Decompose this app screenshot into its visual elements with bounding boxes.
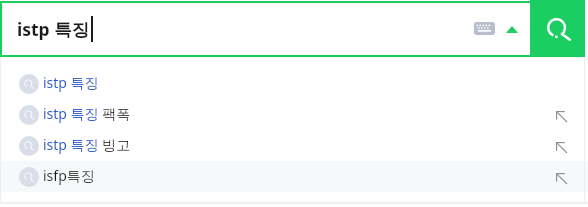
button[interactable]: istp 특징 팩폭: [0, 99, 588, 130]
staticText: isfp특징: [43, 166, 95, 185]
staticText: istp 특징 빙고: [43, 135, 131, 154]
button[interactable]: Keyboard: [465, 9, 497, 49]
button[interactable]: istp 특징 빙고: [0, 130, 588, 161]
button[interactable]: Use this suggestion: [546, 161, 576, 192]
button[interactable]: Search: [530, 0, 585, 57]
button[interactable]: Use this suggestion: [546, 130, 576, 161]
staticText: istp 특징: [17, 17, 90, 41]
button[interactable]: istp 특징: [0, 68, 588, 99]
button[interactable]: isfp특징: [0, 161, 588, 192]
staticText: istp 특징: [43, 73, 99, 92]
button[interactable]: Collapse keyboard: [497, 9, 522, 49]
button[interactable]: Use this suggestion: [546, 99, 576, 130]
staticText: istp 특징 팩폭: [43, 104, 131, 123]
